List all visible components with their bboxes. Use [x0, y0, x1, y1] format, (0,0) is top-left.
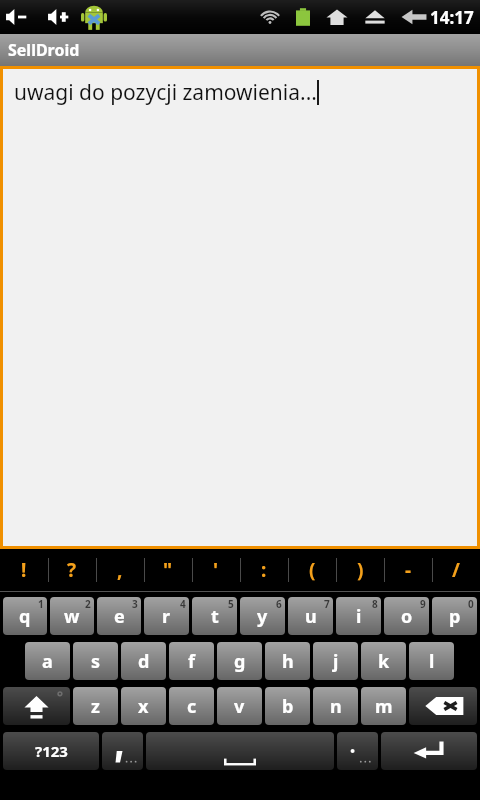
- staticText: i: [356, 604, 362, 629]
- staticText: m: [375, 694, 393, 719]
- button[interactable]: h: [265, 642, 310, 680]
- staticText: s: [91, 649, 101, 674]
- button[interactable]: Comma: [102, 732, 143, 770]
- button[interactable]: uwagi do pozycji zamowienia...: [3, 69, 477, 546]
- staticText: ): [357, 557, 364, 583]
- button[interactable]: :: [240, 549, 288, 591]
- button[interactable]: b: [265, 687, 310, 725]
- button[interactable]: Period: [337, 732, 378, 770]
- staticText: l: [429, 649, 435, 674]
- staticText: k: [378, 649, 390, 674]
- staticText: v: [234, 694, 245, 719]
- staticText: 3: [132, 597, 138, 611]
- button[interactable]: u: [288, 597, 333, 635]
- staticText: r: [162, 604, 171, 629]
- staticText: h: [282, 649, 294, 674]
- button[interactable]: !: [0, 549, 48, 591]
- button[interactable]: t: [192, 597, 237, 635]
- staticText: 7: [324, 597, 330, 611]
- button[interactable]: Delete: [409, 687, 477, 725]
- staticText: u: [305, 604, 317, 629]
- staticText: SellDroid: [8, 39, 80, 61]
- staticText: ': [213, 557, 219, 583]
- staticText: -: [405, 557, 412, 583]
- button[interactable]: Shift: [3, 687, 70, 725]
- button[interactable]: -: [384, 549, 432, 591]
- button[interactable]: ): [336, 549, 384, 591]
- button[interactable]: z: [73, 687, 118, 725]
- button[interactable]: w: [50, 597, 94, 635]
- button[interactable]: Space: [146, 732, 334, 770]
- staticText: 9: [420, 597, 426, 611]
- button[interactable]: Enter: [381, 732, 477, 770]
- staticText: uwagi do pozycji zamowienia...: [14, 78, 317, 107]
- button[interactable]: j: [313, 642, 358, 680]
- staticText: ": [163, 557, 173, 583]
- staticText: ,: [117, 557, 123, 583]
- staticText: t: [211, 604, 219, 629]
- button[interactable]: ": [144, 549, 192, 591]
- staticText: /: [452, 557, 460, 583]
- button[interactable]: s: [73, 642, 118, 680]
- button[interactable]: m: [361, 687, 406, 725]
- staticText: q: [19, 604, 31, 629]
- staticText: e: [114, 604, 125, 629]
- staticText: f: [188, 649, 195, 674]
- staticText: ?: [67, 557, 77, 583]
- staticText: c: [187, 694, 197, 719]
- button[interactable]: d: [121, 642, 166, 680]
- staticText: n: [330, 694, 342, 719]
- staticText: d: [138, 649, 150, 674]
- button[interactable]: n: [313, 687, 358, 725]
- staticText: (: [309, 557, 316, 583]
- staticText: 4: [180, 597, 186, 611]
- button[interactable]: ?: [48, 549, 96, 591]
- button[interactable]: y: [240, 597, 285, 635]
- button[interactable]: g: [217, 642, 262, 680]
- staticText: 6: [276, 597, 282, 611]
- button[interactable]: e: [97, 597, 141, 635]
- staticText: o: [401, 604, 413, 629]
- staticText: z: [91, 694, 100, 719]
- button[interactable]: q: [3, 597, 47, 635]
- button[interactable]: ?123: [3, 732, 99, 770]
- staticText: w: [64, 604, 80, 629]
- staticText: 2: [85, 597, 91, 611]
- staticText: :: [261, 557, 267, 583]
- button[interactable]: (: [288, 549, 336, 591]
- button[interactable]: p: [432, 597, 477, 635]
- staticText: 5: [228, 597, 234, 611]
- button[interactable]: ': [192, 549, 240, 591]
- staticText: y: [257, 604, 268, 629]
- staticText: 8: [372, 597, 378, 611]
- button[interactable]: i: [336, 597, 381, 635]
- staticText: a: [42, 649, 53, 674]
- staticText: 14:17: [430, 6, 474, 29]
- button[interactable]: k: [361, 642, 406, 680]
- staticText: b: [282, 694, 294, 719]
- staticText: x: [138, 694, 149, 719]
- button[interactable]: f: [169, 642, 214, 680]
- staticText: j: [333, 649, 339, 674]
- button[interactable]: /: [432, 549, 480, 591]
- button[interactable]: a: [25, 642, 70, 680]
- staticText: 1: [38, 597, 44, 611]
- button[interactable]: r: [144, 597, 189, 635]
- staticText: 0: [468, 597, 474, 611]
- button[interactable]: x: [121, 687, 166, 725]
- button[interactable]: c: [169, 687, 214, 725]
- staticText: g: [234, 649, 246, 674]
- staticText: !: [21, 557, 27, 583]
- staticText: p: [449, 604, 461, 629]
- button[interactable]: o: [384, 597, 429, 635]
- button[interactable]: v: [217, 687, 262, 725]
- button[interactable]: l: [409, 642, 454, 680]
- button[interactable]: ,: [96, 549, 144, 591]
- staticText: ?123: [35, 741, 68, 761]
